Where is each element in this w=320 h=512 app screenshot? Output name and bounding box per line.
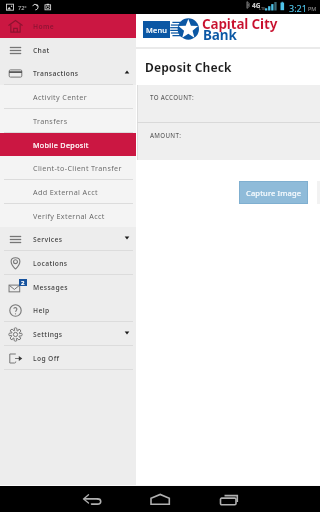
button[interactable]: Transfers — [0, 109, 136, 133]
staticText: Transfers — [33, 116, 68, 126]
staticText: 4G — [252, 1, 261, 10]
button[interactable]: Capture Image — [240, 182, 307, 203]
staticText: Client-to-Client Transfer — [33, 163, 122, 173]
staticText: Locations — [33, 259, 68, 268]
staticText: TO ACCOUNT: — [150, 93, 195, 101]
staticText: Verify External Acct — [33, 211, 105, 221]
staticText: Settings — [33, 330, 63, 339]
button[interactable]: Activity Center — [0, 85, 136, 109]
button[interactable]: Locations — [0, 251, 136, 275]
staticText: Log Off — [33, 354, 60, 363]
staticText: PM — [308, 5, 317, 12]
staticText: Mobile Deposit — [33, 140, 89, 150]
button[interactable]: Services — [0, 227, 136, 251]
staticText: LTE — [259, 6, 266, 11]
staticText: Capital City — [202, 15, 278, 33]
button[interactable]: Chat — [0, 38, 136, 62]
staticText: Chat — [33, 46, 50, 55]
staticText: 2 — [21, 279, 25, 286]
button[interactable]: Home — [0, 14, 136, 38]
staticText: Menu — [146, 25, 168, 35]
staticText: 3:21 — [289, 2, 307, 14]
staticText: Bank — [203, 26, 237, 44]
staticText: Services — [33, 235, 63, 244]
staticText: Deposit Check — [145, 59, 232, 75]
staticText: Messages — [33, 283, 68, 292]
staticText: Activity Center — [33, 92, 88, 102]
button[interactable]: Home — [130, 486, 190, 512]
button[interactable]: Settings — [0, 322, 136, 346]
button[interactable]: Verify External Acct — [0, 204, 136, 228]
staticText: Transactions — [33, 69, 79, 78]
staticText: Help — [33, 306, 50, 315]
button[interactable]: Add External Acct — [0, 180, 136, 204]
button[interactable]: Client-to-Client Transfer — [0, 156, 136, 180]
staticText: Add External Acct — [33, 187, 98, 197]
button[interactable]: Recent apps — [199, 486, 259, 512]
button[interactable]: 2 — [0, 275, 136, 299]
button[interactable]: Help — [0, 298, 136, 322]
button[interactable]: Mobile Deposit — [0, 133, 136, 157]
staticText: Home — [33, 22, 54, 31]
button[interactable]: Menu — [143, 21, 170, 38]
staticText: Capture Image — [246, 188, 302, 198]
button[interactable]: Back — [63, 486, 123, 512]
staticText: AMOUNT: — [150, 131, 182, 139]
button[interactable]: Log Off — [0, 346, 136, 370]
button[interactable]: Transactions — [0, 61, 136, 85]
staticText: 72° — [18, 4, 27, 11]
